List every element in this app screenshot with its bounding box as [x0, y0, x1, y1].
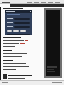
button[interactable]: Screenshot	[5, 10, 32, 35]
button[interactable]	[7, 17, 30, 20]
button[interactable]	[7, 30, 12, 32]
button[interactable]: Sponsored panel	[46, 10, 60, 76]
button[interactable]	[20, 30, 26, 32]
button[interactable]	[13, 30, 19, 32]
button[interactable]	[7, 25, 30, 28]
button[interactable]	[7, 21, 30, 24]
